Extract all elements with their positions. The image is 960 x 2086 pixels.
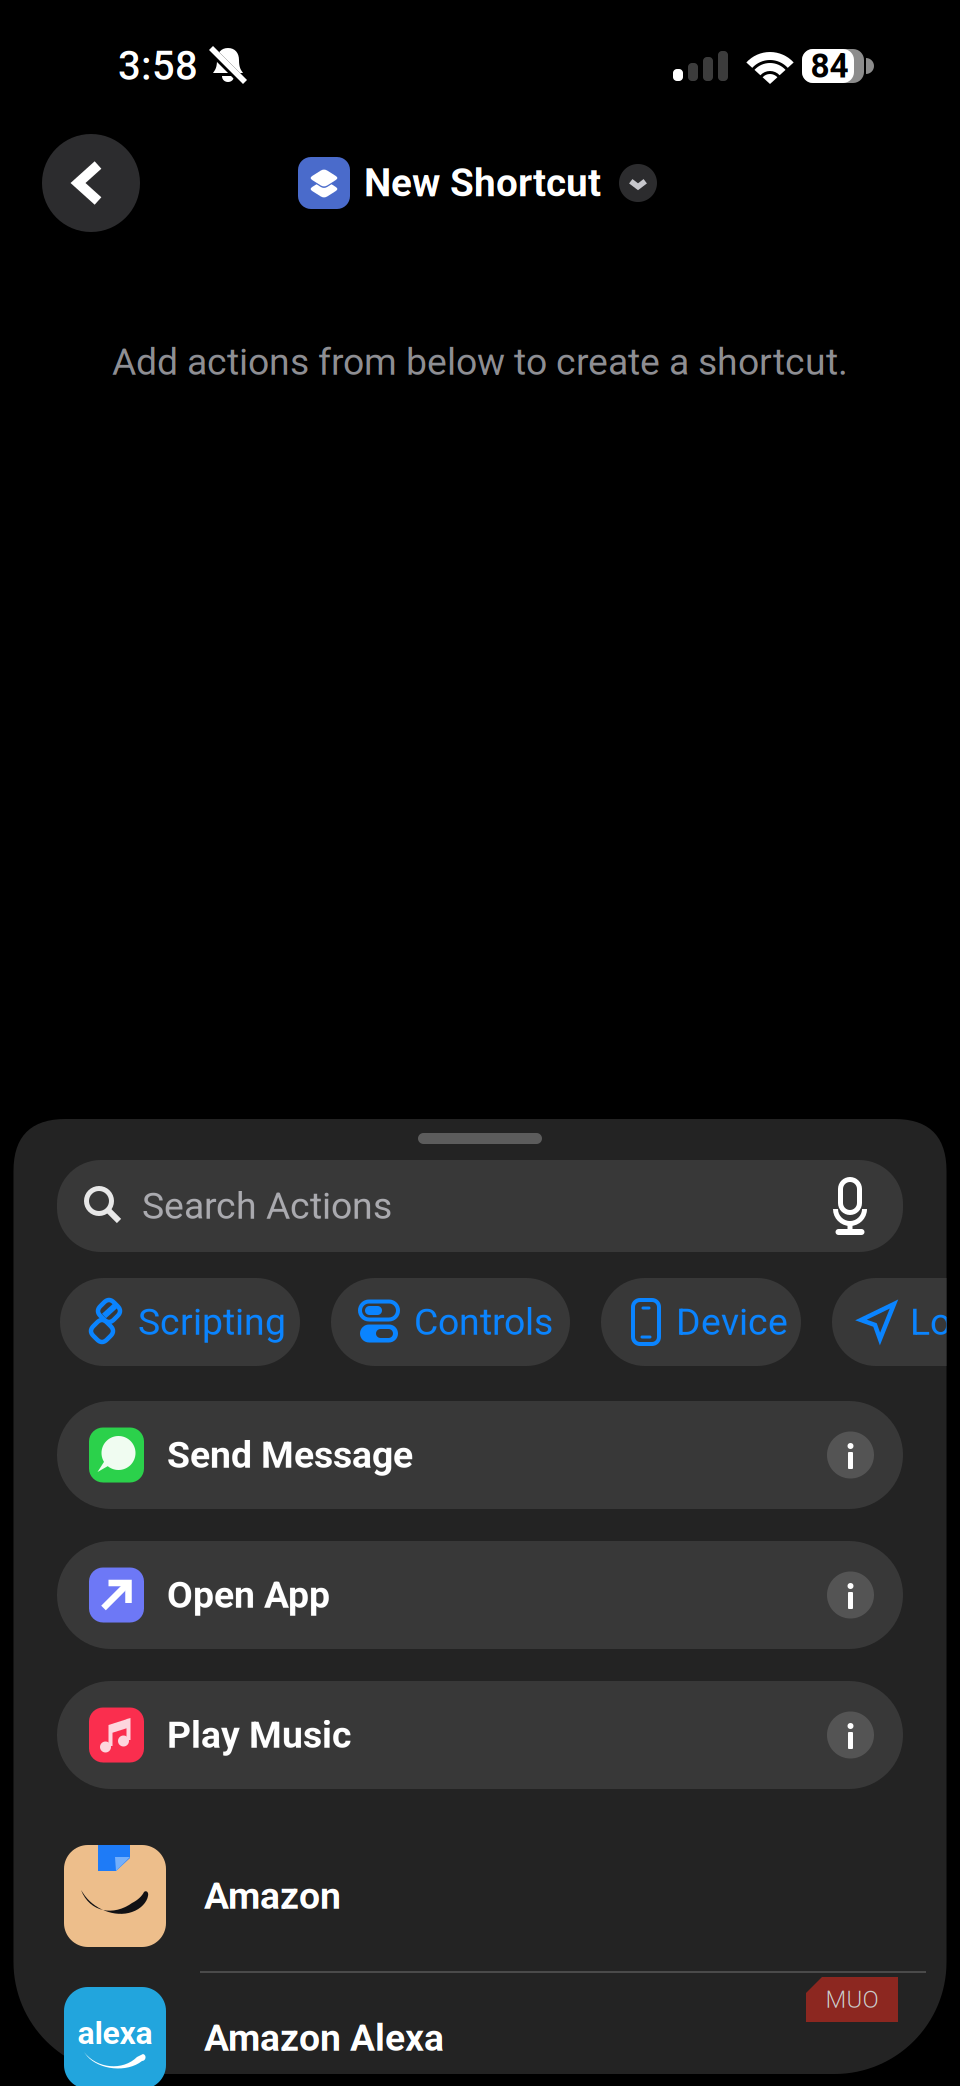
button[interactable]: Device — [601, 1278, 801, 1366]
button[interactable]: Location — [832, 1278, 960, 1366]
button[interactable]: Amazon — [0, 1833, 960, 1959]
button[interactable]: Play Music — [57, 1681, 903, 1789]
button[interactable]: Search Actions — [57, 1160, 903, 1252]
staticText: Send Message — [167, 1433, 413, 1477]
staticText: Add actions from below to create a short… — [112, 340, 848, 384]
staticText: MUO — [825, 1985, 878, 2013]
staticText: Search Actions — [142, 1184, 392, 1228]
staticText: New Shortcut — [364, 160, 601, 206]
staticText: Amazon — [204, 1874, 341, 1918]
staticText: Amazon Alexa — [204, 2016, 444, 2060]
staticText: alexa — [77, 2014, 152, 2052]
button[interactable]: Open App — [57, 1541, 903, 1649]
staticText: Location — [910, 1300, 960, 1344]
staticText: 84 — [810, 46, 848, 86]
button[interactable]: Send Message — [57, 1401, 903, 1509]
staticText: 3:58 — [118, 43, 198, 89]
button[interactable]: More info — [827, 1431, 874, 1478]
staticText: Play Music — [167, 1713, 351, 1757]
staticText: Scripting — [138, 1300, 286, 1344]
button[interactable]: alexa — [0, 1975, 960, 2086]
button[interactable]: Controls — [331, 1278, 570, 1366]
button[interactable]: Scripting — [60, 1278, 300, 1366]
button[interactable]: New Shortcut — [298, 157, 657, 209]
button[interactable]: More info — [827, 1711, 874, 1758]
button[interactable]: More info — [827, 1571, 874, 1618]
staticText: Device — [676, 1300, 788, 1344]
staticText: Open App — [167, 1573, 330, 1617]
staticText: Controls — [414, 1300, 553, 1344]
button[interactable]: Back — [42, 134, 140, 232]
